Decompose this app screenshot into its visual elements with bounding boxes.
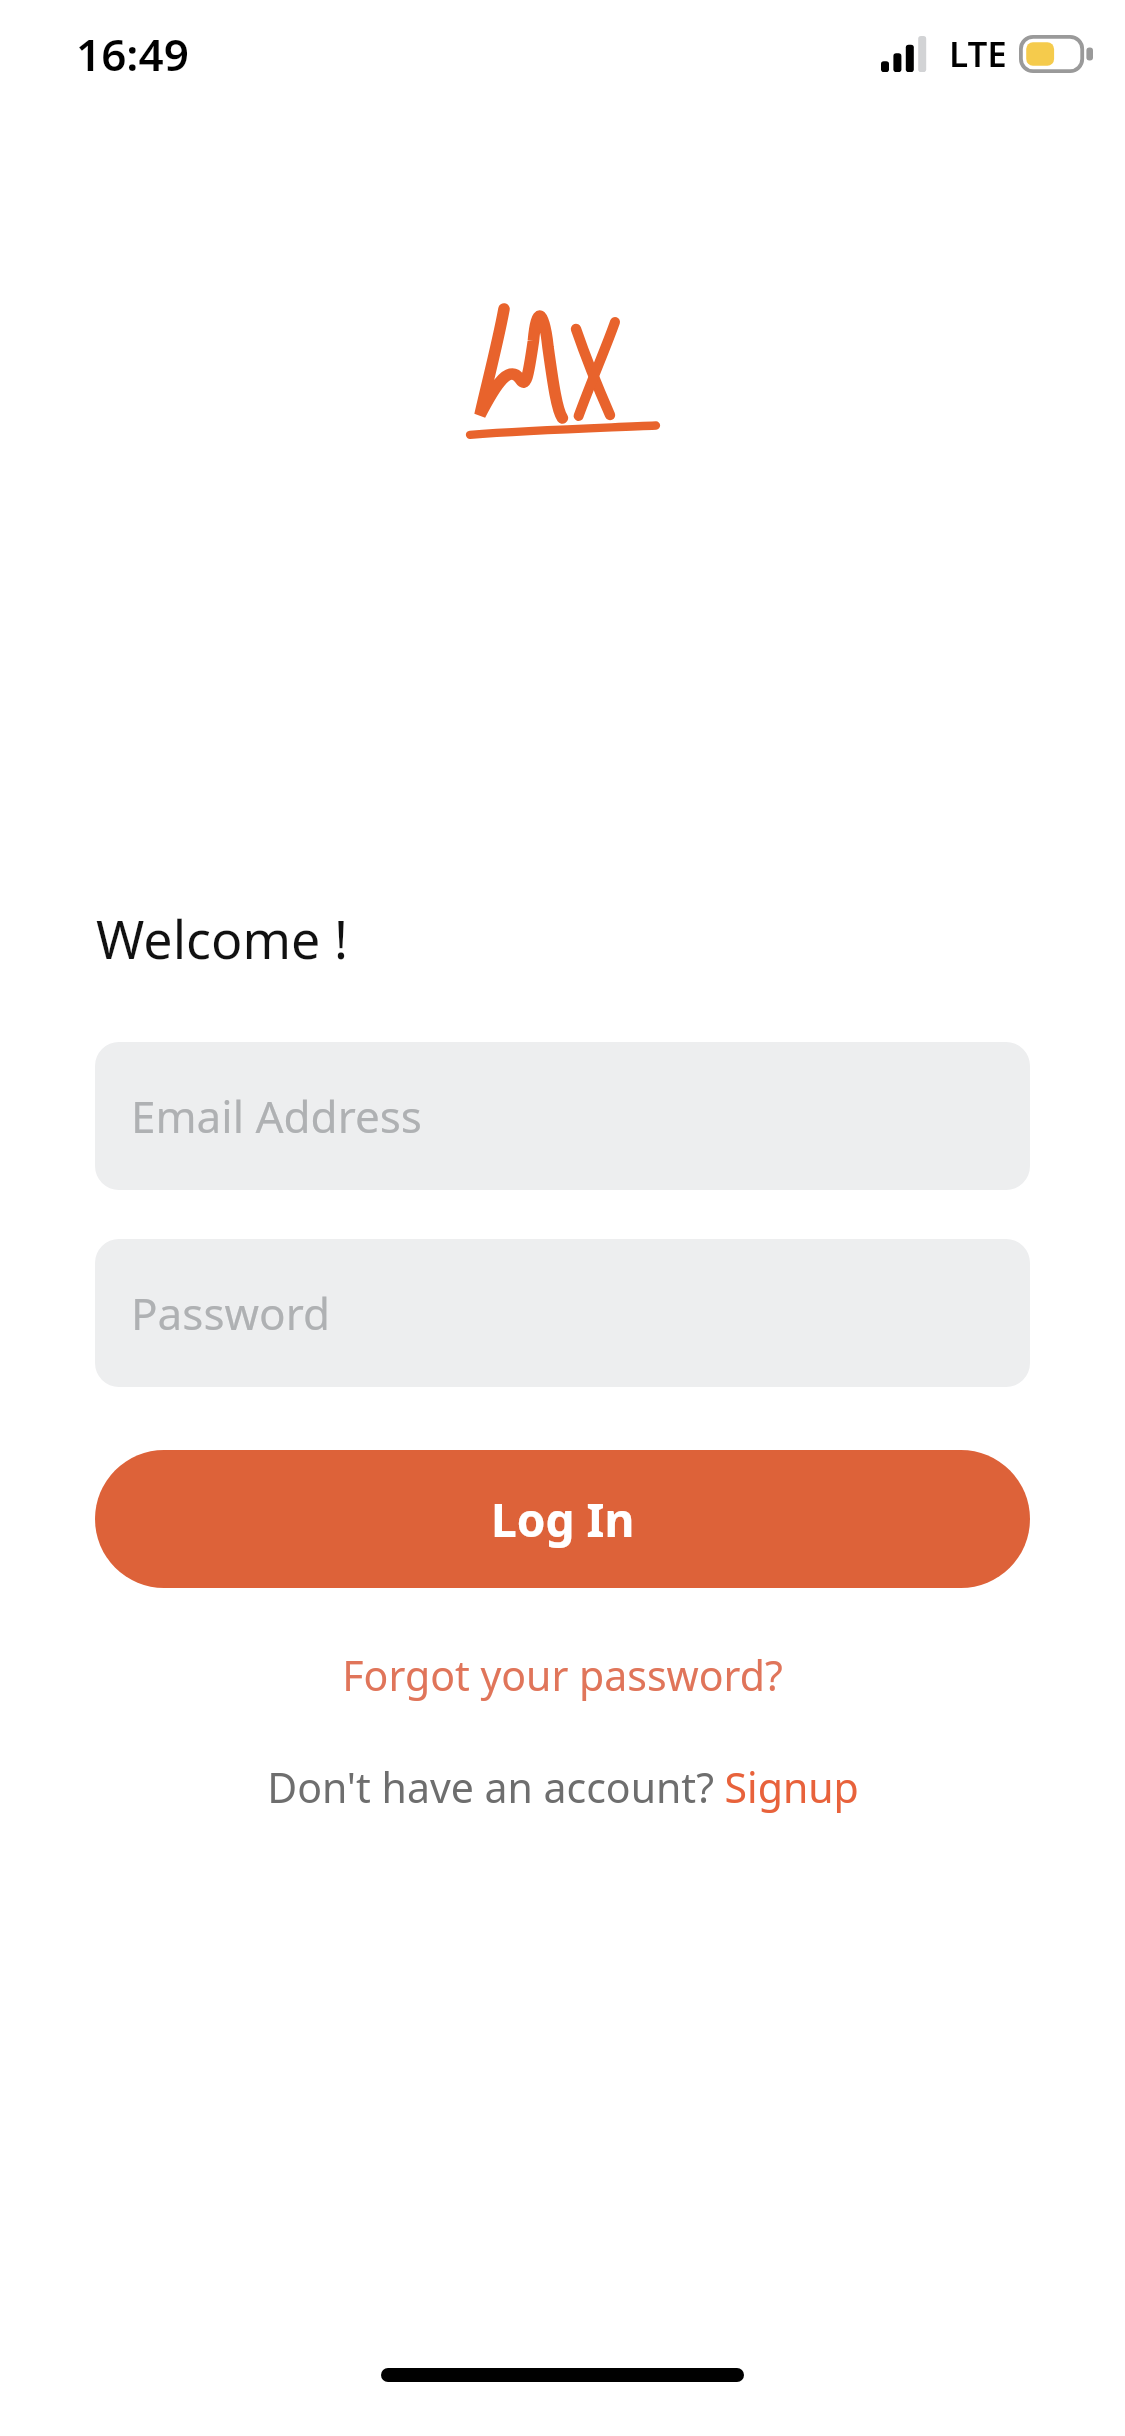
button[interactable]: Forgot your password? <box>0 1647 1125 1703</box>
button[interactable]: Password <box>95 1239 1030 1387</box>
staticText: 16:49 <box>76 24 189 84</box>
staticText: Password <box>131 1283 331 1343</box>
other: MX logo <box>463 298 663 458</box>
staticText: Email Address <box>131 1086 422 1146</box>
button[interactable]: Log In <box>95 1450 1030 1588</box>
staticText: Forgot your password? <box>342 1647 783 1703</box>
staticText: Don't have an account? Signup <box>267 1759 859 1815</box>
staticText: Welcome ! <box>96 903 348 974</box>
button[interactable]: Don't have an account? Signup <box>0 1759 1125 1815</box>
staticText: Log In <box>491 1488 635 1551</box>
button[interactable]: Email Address <box>95 1042 1030 1190</box>
staticText: LTE <box>949 30 1007 78</box>
